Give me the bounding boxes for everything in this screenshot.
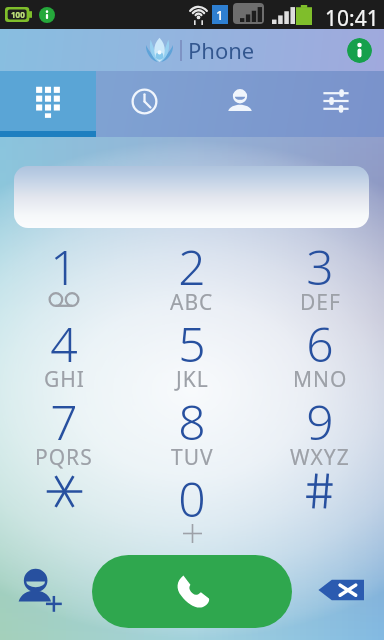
button[interactable]: 0 [128, 469, 256, 546]
staticText: PQRS [35, 443, 93, 472]
staticText: 6 [306, 311, 334, 376]
staticText: 10:41 [325, 4, 379, 33]
button[interactable]: Call [92, 555, 292, 628]
staticText: Phone [188, 35, 255, 65]
staticText: 3 [306, 234, 334, 299]
staticText: TUV [171, 443, 214, 472]
button[interactable] [0, 469, 128, 546]
staticText: WXYZ [290, 443, 350, 472]
button[interactable]: 5 [128, 314, 256, 391]
button[interactable]: Backspace [312, 572, 370, 608]
staticText: 0 [178, 466, 206, 531]
button[interactable]: 3 [256, 237, 384, 314]
button[interactable]: 4 [0, 314, 128, 391]
button[interactable]: 8 [128, 392, 256, 469]
staticText: 1 [216, 6, 224, 24]
button[interactable]: Call logs [96, 71, 192, 137]
button[interactable] [256, 469, 384, 546]
button[interactable]: Add contact [14, 564, 64, 612]
button[interactable]: Settings [288, 71, 384, 137]
staticText: 7 [50, 389, 78, 454]
button[interactable]: 6 [256, 314, 384, 391]
staticText: GHI [44, 365, 85, 394]
button[interactable]: 9 [256, 392, 384, 469]
staticText: 100 [11, 9, 25, 20]
staticText: 8 [178, 389, 206, 454]
staticText: 4 [50, 311, 78, 376]
staticText: 9 [306, 389, 334, 454]
staticText: 2 [178, 234, 206, 299]
staticText: 1 [50, 234, 78, 299]
button[interactable] [14, 166, 369, 228]
staticText: DEF [300, 288, 341, 317]
button[interactable]: 1 [0, 237, 128, 314]
button[interactable]: Keypad [0, 71, 96, 137]
button[interactable]: 2 [128, 237, 256, 314]
staticText: JKL [176, 365, 209, 394]
button[interactable]: Info [347, 38, 372, 63]
button[interactable]: Contacts [192, 71, 288, 137]
staticText: MNO [293, 365, 348, 394]
staticText: 5 [178, 311, 206, 376]
staticText: ABC [170, 288, 214, 317]
button[interactable]: 7 [0, 392, 128, 469]
